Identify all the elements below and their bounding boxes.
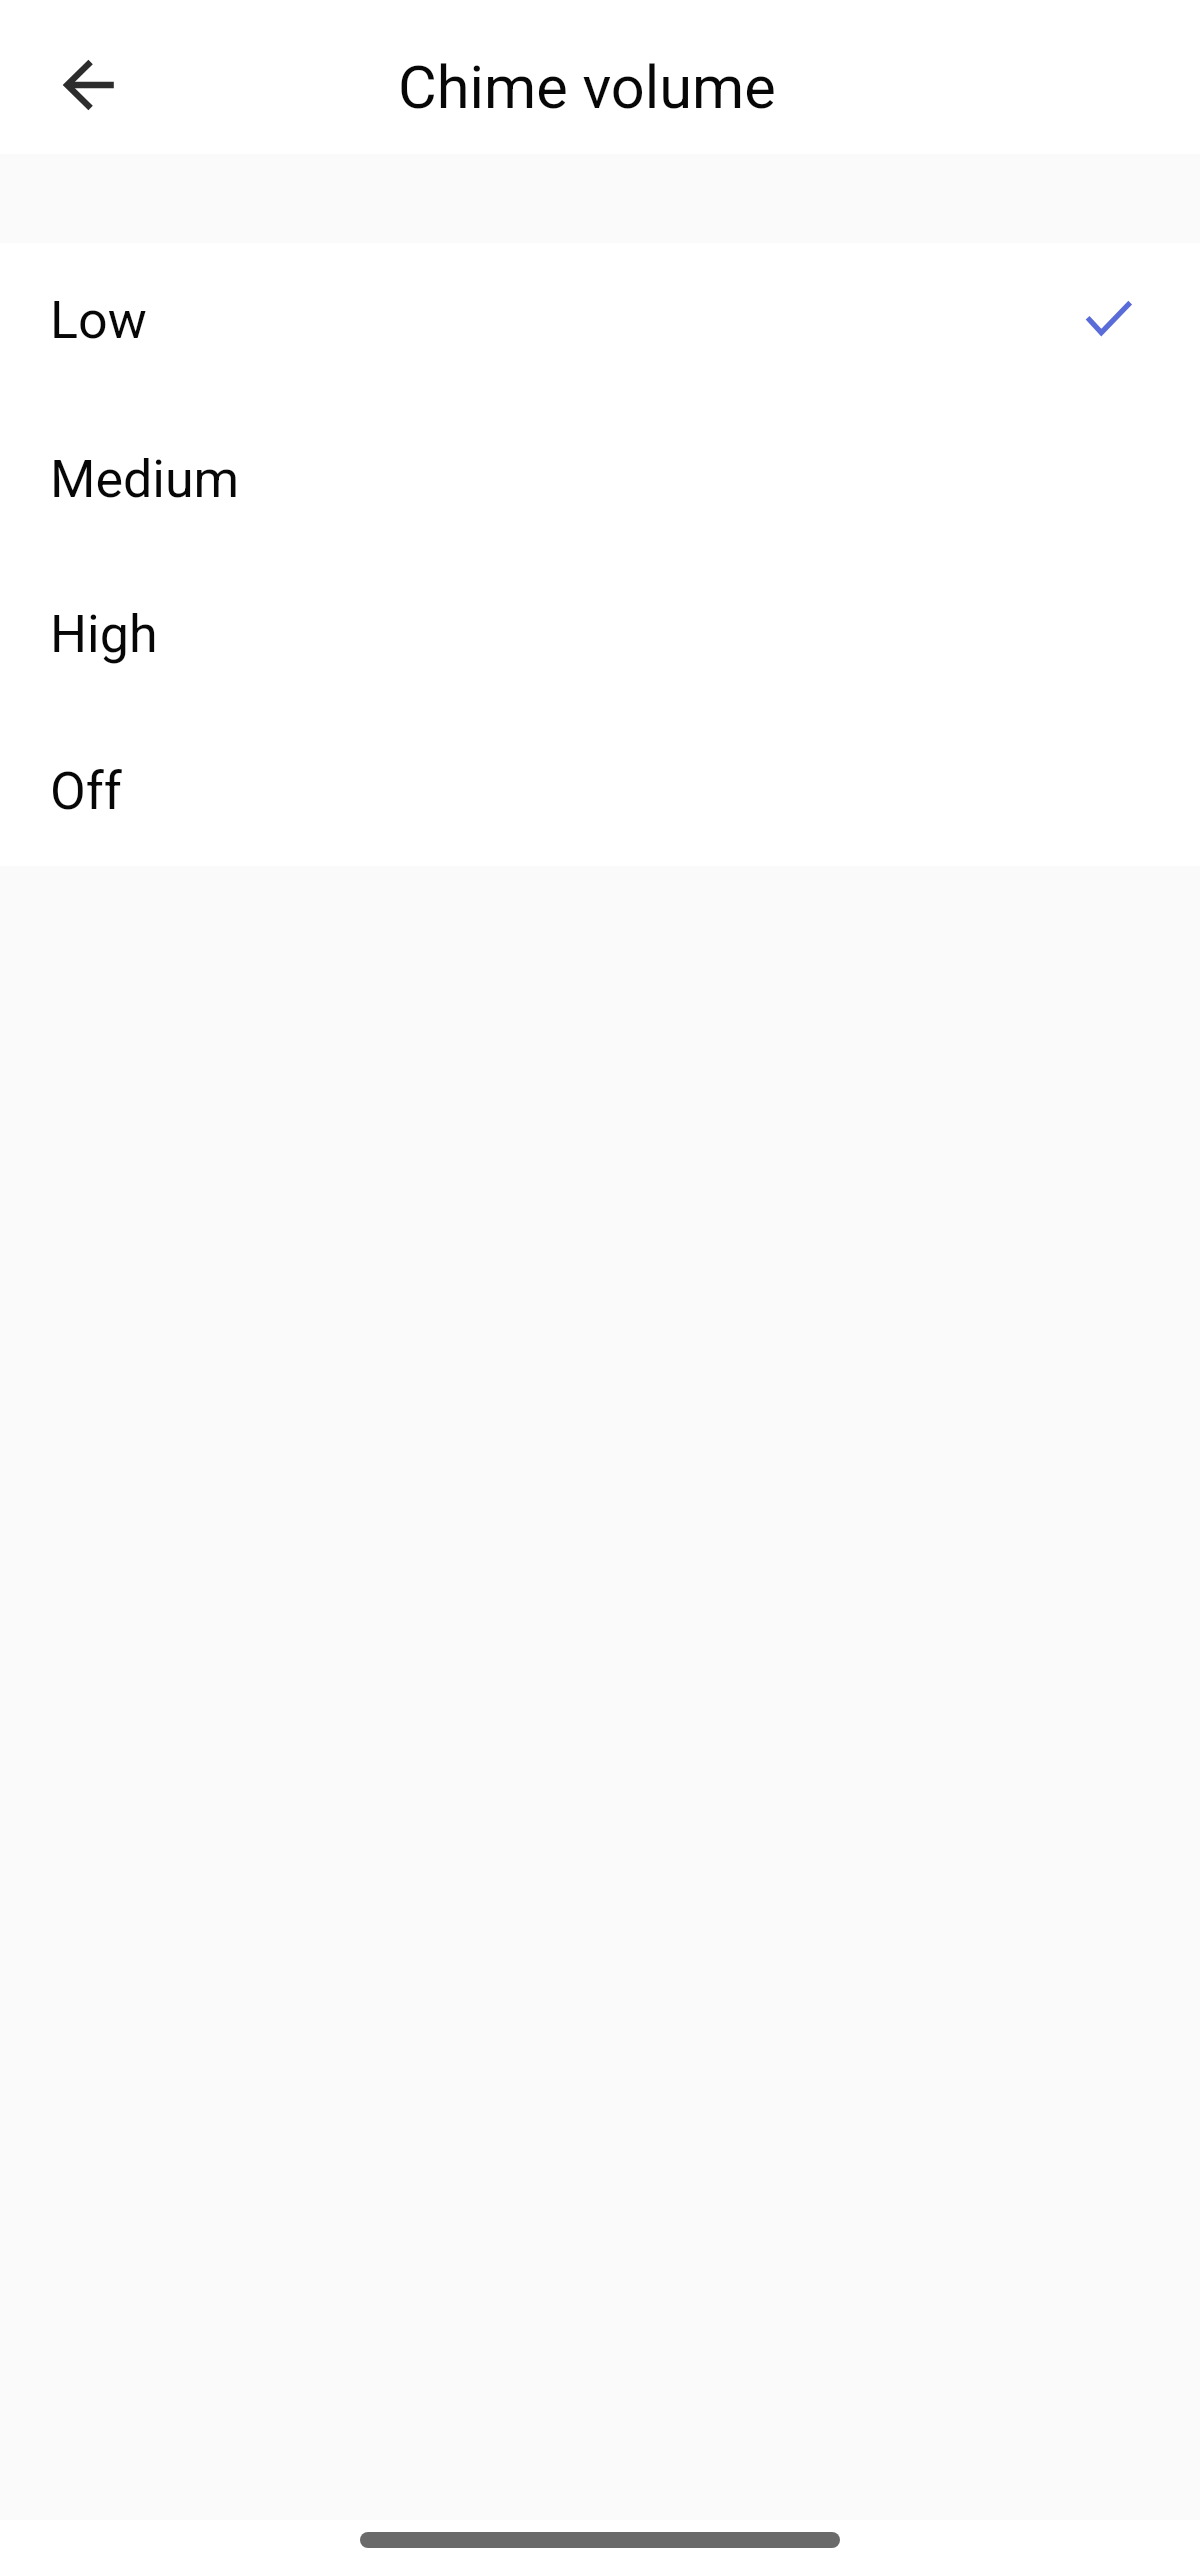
button[interactable]: High	[0, 555, 1200, 711]
button[interactable]: Low	[0, 243, 1200, 399]
staticText: High	[50, 604, 158, 665]
button[interactable]: Medium	[0, 399, 1200, 555]
staticText: Chime volume	[398, 53, 776, 123]
staticText: Off	[50, 761, 122, 822]
staticText: Low	[50, 290, 147, 351]
staticText: Medium	[50, 449, 240, 510]
button[interactable]: Off	[0, 711, 1200, 866]
button[interactable]: Navigate up	[43, 37, 139, 133]
